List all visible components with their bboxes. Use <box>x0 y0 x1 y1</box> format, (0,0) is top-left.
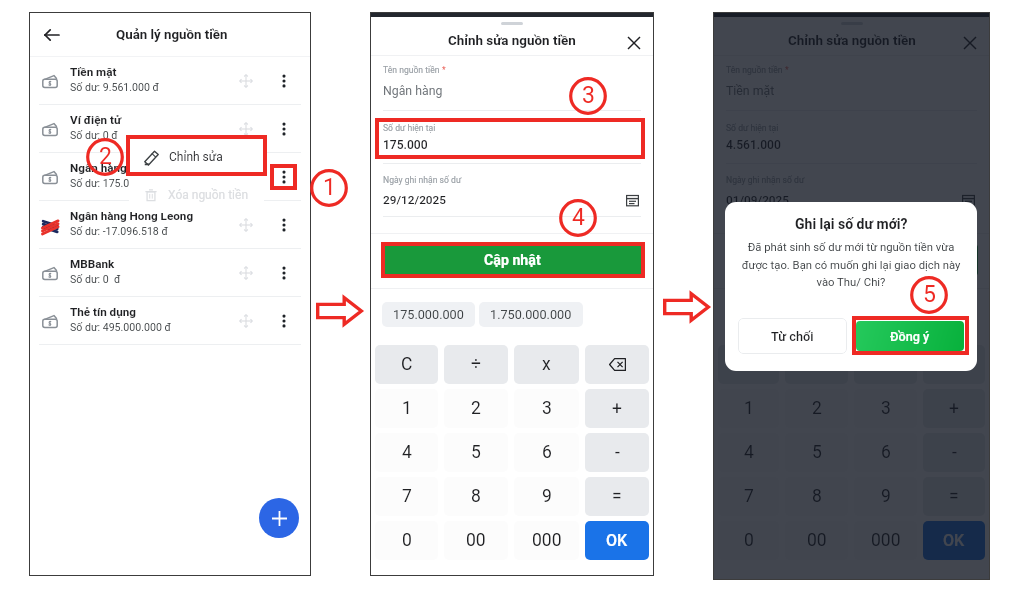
button[interactable]: C <box>375 345 438 384</box>
button[interactable]: 00 <box>785 521 848 560</box>
staticText: 9 <box>881 486 891 507</box>
staticText: OK <box>606 531 628 550</box>
staticText: 4 <box>402 442 412 463</box>
button[interactable]: 2 <box>444 389 508 428</box>
button[interactable]: 5 <box>785 433 848 472</box>
button[interactable]: x <box>514 345 579 384</box>
button[interactable]: 3 <box>514 389 579 428</box>
button[interactable]: 3 <box>854 389 917 428</box>
staticText: Số dư hiện tại <box>726 123 779 133</box>
button[interactable]: 1.750.000.000 <box>479 302 583 327</box>
button[interactable]: 4 <box>375 433 438 472</box>
button[interactable]: Từ chối <box>738 318 847 354</box>
staticText: Số dư hiện tại <box>383 123 436 133</box>
button[interactable]: + <box>923 389 985 428</box>
button[interactable]: C <box>718 345 779 384</box>
button[interactable]: OK <box>923 521 985 560</box>
button[interactable]: Backspace <box>923 345 985 384</box>
staticText: 1 <box>323 174 336 201</box>
button[interactable]: Close <box>959 32 981 54</box>
staticText: 4.561.000 <box>726 138 781 152</box>
staticText: Ngân hàng <box>70 161 127 175</box>
button[interactable]: 8 <box>785 477 848 516</box>
button[interactable]: 000 <box>854 521 917 560</box>
staticText: 29/12/2025 <box>383 193 623 207</box>
staticText: 7 <box>744 486 754 507</box>
button[interactable]: 7 <box>718 477 779 516</box>
button[interactable]: 000 <box>514 521 579 560</box>
staticText: x <box>542 354 551 375</box>
button[interactable]: Back <box>39 22 65 48</box>
button[interactable]: MBBank <box>30 249 310 296</box>
staticText: OK <box>943 531 965 550</box>
button[interactable]: 2 <box>785 389 848 428</box>
staticText: 6 <box>542 442 552 463</box>
button[interactable]: Add <box>259 498 299 538</box>
button[interactable]: = <box>923 477 985 516</box>
staticText: 2 <box>471 398 481 419</box>
button[interactable]: Cập nhật <box>382 245 642 275</box>
staticText: 8 <box>471 486 481 507</box>
button[interactable]: Tiền mặt <box>30 57 310 104</box>
button[interactable]: More options <box>258 57 310 104</box>
button[interactable]: More options <box>258 105 310 152</box>
button[interactable]: Cập nhật <box>725 245 978 275</box>
button[interactable]: More options <box>258 297 310 344</box>
staticText: 3 <box>542 398 552 419</box>
button[interactable]: 7 <box>375 477 438 516</box>
button[interactable]: 6 <box>514 433 579 472</box>
button[interactable]: More options <box>258 153 310 200</box>
button[interactable]: 1 <box>718 389 779 428</box>
button[interactable]: - <box>585 433 649 472</box>
staticText: Cập nhật <box>484 252 541 269</box>
staticText: - <box>952 442 957 463</box>
button[interactable]: Ngân hàng <box>30 153 310 200</box>
button[interactable]: Pick date <box>959 191 977 209</box>
staticText: = <box>612 486 622 507</box>
staticText: Đã phát sinh số dư mới từ nguồn tiền vừa… <box>737 241 965 288</box>
button[interactable]: 4 <box>718 433 779 472</box>
button[interactable]: Xóa nguồn tiền <box>129 176 264 213</box>
button[interactable]: = <box>585 477 649 516</box>
button[interactable]: 1 <box>375 389 438 428</box>
button[interactable]: + <box>585 389 649 428</box>
button[interactable]: Backspace <box>585 345 649 384</box>
staticText: Số dư: 0 đ <box>70 129 118 141</box>
button[interactable]: 9 <box>854 477 917 516</box>
button[interactable]: 8 <box>444 477 508 516</box>
button[interactable]: Đồng ý <box>856 321 964 351</box>
button[interactable]: Thẻ tín dụng <box>30 297 310 344</box>
button[interactable]: More options <box>258 249 310 296</box>
button[interactable]: 0 <box>718 521 779 560</box>
button[interactable]: ÷ <box>444 345 508 384</box>
staticText: Cập nhật <box>823 252 880 269</box>
staticText: Ví điện tử <box>70 113 122 127</box>
staticText: Ngân hàng <box>383 84 443 98</box>
button[interactable]: 9 <box>514 477 579 516</box>
button[interactable]: OK <box>585 521 649 560</box>
staticText: * <box>442 65 446 75</box>
staticText: 2 <box>99 143 112 170</box>
staticText: Số dư: -17.096.518 đ <box>70 225 168 237</box>
staticText: 000 <box>532 530 562 551</box>
staticText: = <box>949 486 959 507</box>
button[interactable]: 5 <box>444 433 508 472</box>
staticText: 2 <box>812 398 822 419</box>
button[interactable]: Ngân hàng Hong Leong <box>30 201 310 248</box>
button[interactable]: Pick date <box>623 191 641 209</box>
button[interactable]: 0 <box>375 521 438 560</box>
button[interactable]: ÷ <box>785 345 848 384</box>
button[interactable]: 175.000.000 <box>382 302 475 327</box>
button[interactable]: 1.750.000.000 <box>822 302 926 327</box>
button[interactable]: 00 <box>444 521 508 560</box>
button[interactable]: 6 <box>854 433 917 472</box>
button[interactable]: x <box>854 345 917 384</box>
staticText: C <box>401 354 413 375</box>
button[interactable]: Chỉnh sửa <box>129 138 264 176</box>
button[interactable]: Ví điện tử <box>30 105 310 152</box>
button[interactable]: Close <box>623 32 645 54</box>
button[interactable]: 175.000.000 <box>725 302 818 327</box>
button[interactable]: More options <box>258 201 310 248</box>
